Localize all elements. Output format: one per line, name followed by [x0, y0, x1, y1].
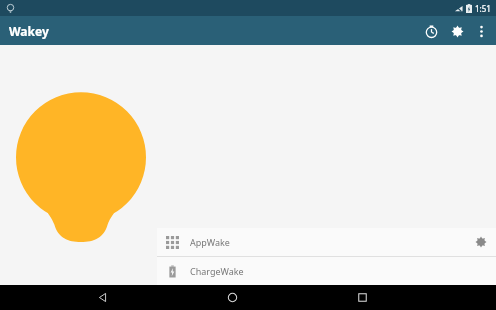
- staticText: 1:51: [475, 3, 491, 14]
- button[interactable]: Settings: [444, 18, 470, 44]
- staticText: AppWake: [190, 236, 230, 248]
- staticText: Wakey: [9, 23, 49, 39]
- staticText: ChargeWake: [190, 265, 244, 277]
- button[interactable]: ChargeWake: [157, 257, 496, 285]
- button[interactable]: Back: [82, 285, 122, 310]
- button[interactable]: Home: [212, 285, 252, 310]
- button[interactable]: AppWake settings: [468, 229, 494, 255]
- button[interactable]: Timer: [418, 18, 444, 44]
- button[interactable]: Recent apps: [342, 285, 382, 310]
- button[interactable]: More options: [470, 20, 492, 42]
- button[interactable]: AppWake: [157, 228, 496, 256]
